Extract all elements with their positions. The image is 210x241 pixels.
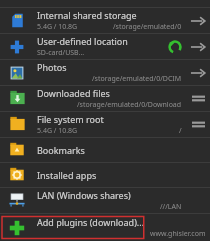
- staticText: Internal shared storage: [37, 9, 137, 21]
- staticText: SD-card/USB...: [37, 48, 85, 58]
- button[interactable]: Open: [190, 67, 206, 79]
- staticText: Downloaded files: [37, 87, 110, 99]
- staticText: www.ghisler.com: [150, 229, 206, 239]
- staticText: 5.4G / 10.8G: [37, 126, 78, 136]
- button[interactable]: File system root: [0, 112, 210, 137]
- button[interactable]: Refresh: [166, 38, 184, 56]
- staticText: /storage/emulated/0/Download: [77, 100, 182, 110]
- staticText: LAN (Windows shares): [37, 189, 131, 201]
- staticText: Photos: [37, 61, 67, 73]
- button[interactable]: Internal shared storage: [0, 8, 210, 33]
- staticText: /: [179, 126, 182, 136]
- staticText: Bookmarks: [37, 144, 85, 156]
- button[interactable]: Bookmarks: [0, 138, 210, 162]
- button[interactable]: LAN (Windows shares): [0, 188, 210, 213]
- button[interactable]: Options: [192, 94, 205, 104]
- button[interactable]: Add plugins (download)...: [0, 214, 210, 241]
- button[interactable]: Downloaded files: [0, 86, 210, 111]
- staticText: File system root: [37, 113, 104, 125]
- staticText: Installed apps: [37, 169, 97, 181]
- staticText: ///LAN: [160, 202, 182, 212]
- button[interactable]: Options: [192, 120, 205, 130]
- staticText: /storage/emulated/0: [113, 22, 182, 32]
- button[interactable]: Photos: [0, 60, 210, 85]
- staticText: 5.4G / 10.8G: [37, 22, 78, 32]
- button[interactable]: Open: [190, 15, 206, 27]
- staticText: Add plugins (download)...: [37, 216, 145, 228]
- button[interactable]: Installed apps: [0, 163, 210, 187]
- button[interactable]: Open: [190, 41, 206, 53]
- button[interactable]: User-defined location: [0, 34, 210, 59]
- staticText: User-defined location: [37, 35, 128, 47]
- staticText: /storage/emulated/0/DCIM: [92, 74, 182, 84]
